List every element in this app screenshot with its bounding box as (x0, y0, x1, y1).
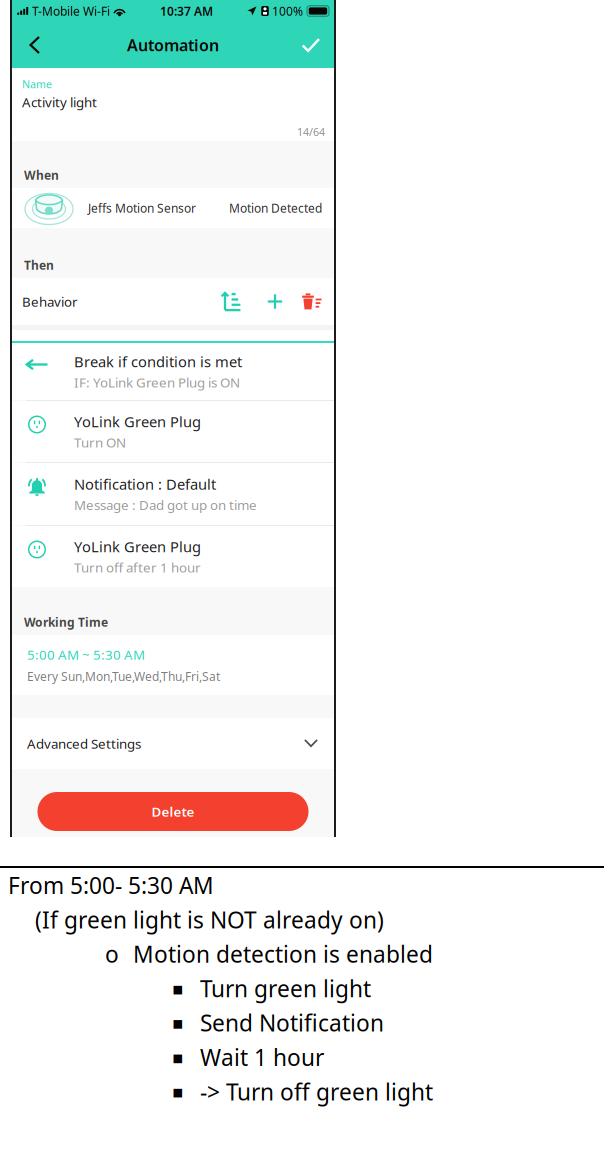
staticText: Delete (151, 803, 194, 820)
staticText: 5:00 AM ~ 5:30 AM (27, 646, 145, 663)
staticText: Turn off after 1 hour (74, 558, 201, 576)
button[interactable]: Reorder (207, 278, 255, 325)
staticText: ▪ (172, 1082, 184, 1101)
staticText: Notification : Default (74, 474, 216, 494)
staticText: T-Mobile Wi-Fi (32, 3, 110, 19)
staticText: When (24, 167, 59, 183)
staticText: 10:37 AM (160, 3, 213, 19)
staticText: Motion Detected (229, 200, 322, 216)
staticText: o (105, 939, 119, 969)
staticText: ▪ (172, 979, 184, 998)
staticText: Message : Dad got up on time (74, 496, 257, 514)
staticText: Turn green light (200, 973, 371, 1003)
button[interactable]: Delete behavior (295, 278, 329, 325)
staticText: ▪ (172, 1047, 184, 1067)
button[interactable]: Delete (37, 792, 308, 831)
staticText: Send Notification (200, 1008, 384, 1038)
staticText: Behavior (22, 293, 78, 310)
staticText: IF: YoLink Green Plug is ON (74, 373, 240, 391)
staticText: Name (22, 77, 52, 91)
button[interactable]: Save (288, 22, 334, 68)
button[interactable]: YoLink Green Plug (12, 526, 334, 587)
button[interactable]: YoLink Green Plug (12, 401, 334, 462)
staticText: Then (24, 257, 54, 273)
button[interactable]: Back (12, 22, 58, 68)
staticText: 14/64 (297, 125, 325, 139)
staticText: Every Sun,Mon,Tue,Wed,Thu,Fri,Sat (27, 668, 220, 684)
staticText: From 5:00- 5:30 AM (8, 870, 214, 900)
staticText: YoLink Green Plug (74, 412, 201, 431)
button[interactable]: Advanced Settings (12, 718, 334, 769)
staticText: 100% (272, 3, 303, 19)
button[interactable]: Break if condition is met (12, 343, 334, 400)
staticText: -> Turn off green light (200, 1076, 433, 1107)
staticText: YoLink Green Plug (74, 537, 201, 556)
staticText: Motion detection is enabled (133, 939, 433, 969)
staticText: Jeffs Motion Sensor (88, 200, 196, 216)
button[interactable]: Add behavior (255, 278, 295, 325)
staticText: Advanced Settings (27, 735, 141, 752)
button[interactable]: Jeffs Motion Sensor (12, 188, 334, 228)
staticText: Wait 1 hour (200, 1042, 324, 1072)
staticText: Working Time (24, 614, 108, 630)
staticText: Break if condition is met (74, 352, 242, 371)
staticText: Turn ON (74, 433, 126, 451)
staticText: Automation (127, 34, 219, 56)
button[interactable]: Notification : Default (12, 463, 334, 525)
staticText: Activity light (22, 93, 97, 111)
button[interactable]: 5:00 AM ~ 5:30 AM (12, 635, 334, 695)
staticText: (If green light is NOT already on) (35, 904, 384, 935)
staticText: ▪ (172, 1013, 184, 1033)
